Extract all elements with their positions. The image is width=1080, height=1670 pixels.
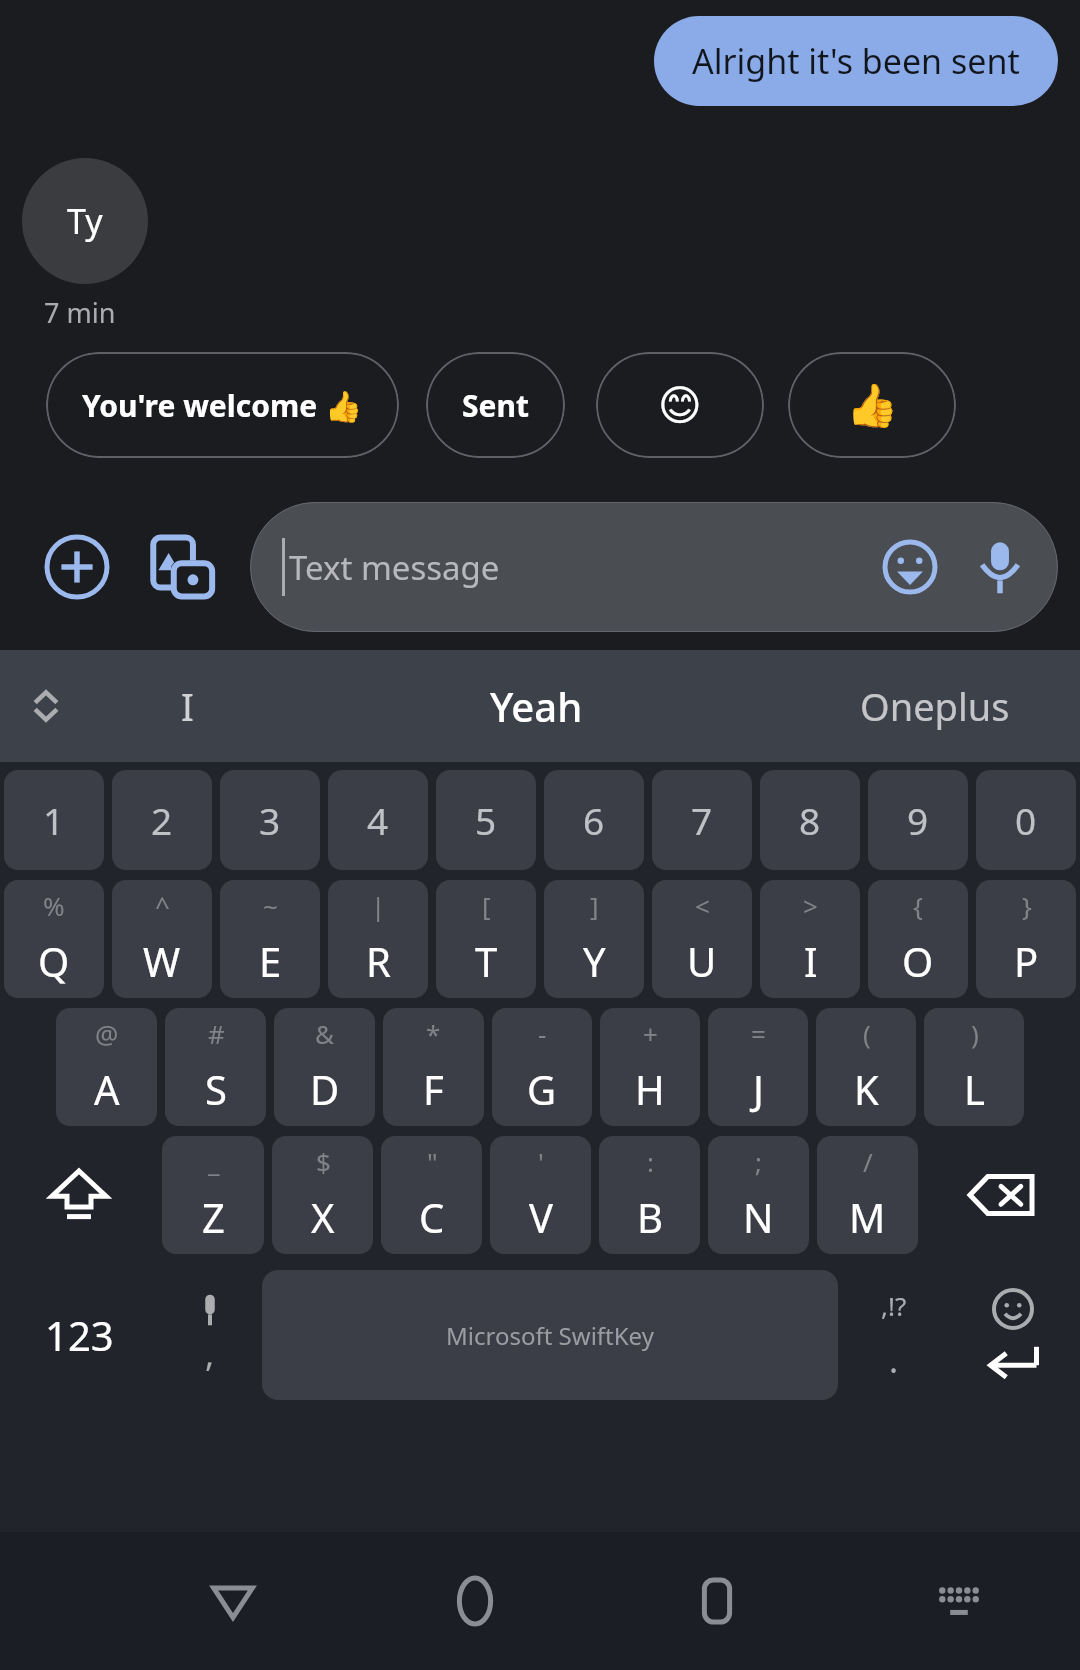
staticText: Y: [583, 934, 606, 988]
staticText: U: [687, 934, 717, 988]
button[interactable]: 5: [436, 770, 536, 870]
button[interactable]: Hide keyboard: [919, 1561, 999, 1641]
button[interactable]: 3: [220, 770, 320, 870]
button[interactable]: Add attachment: [44, 534, 110, 600]
button[interactable]: 8: [760, 770, 860, 870]
button[interactable]: ': [490, 1136, 591, 1254]
button[interactable]: %: [4, 880, 104, 998]
staticText: O: [902, 934, 934, 988]
staticText: Oneplus: [860, 680, 1010, 732]
button[interactable]: 9: [868, 770, 968, 870]
button[interactable]: |: [328, 880, 428, 998]
button[interactable]: 2: [112, 770, 212, 870]
staticText: ,!?: [881, 1288, 907, 1323]
staticText: Ty: [67, 198, 103, 244]
button[interactable]: -: [492, 1008, 592, 1126]
button[interactable]: Emoji: [882, 539, 938, 595]
staticText: 👍: [846, 381, 899, 430]
button[interactable]: }: [976, 880, 1076, 998]
button[interactable]: Backspace: [922, 1136, 1080, 1254]
button[interactable]: Yeah: [282, 650, 790, 762]
button[interactable]: <: [652, 880, 752, 998]
button[interactable]: Thumbs up: [788, 352, 956, 458]
button[interactable]: *: [383, 1008, 484, 1126]
button[interactable]: Send photo: [152, 535, 216, 599]
staticText: _: [208, 1144, 220, 1179]
button[interactable]: Smiling face: [596, 352, 764, 458]
button[interactable]: You're welcome 👍: [46, 352, 399, 458]
button[interactable]: $: [272, 1136, 373, 1254]
button[interactable]: Text message: [250, 502, 1058, 632]
staticText: 0: [1015, 795, 1037, 845]
button[interactable]: 0: [976, 770, 1076, 870]
staticText: R: [366, 934, 391, 988]
staticText: V: [529, 1190, 553, 1244]
button[interactable]: [: [436, 880, 536, 998]
button[interactable]: Emoji and enter: [946, 1270, 1080, 1400]
staticText: $: [316, 1144, 331, 1179]
button[interactable]: 123: [0, 1270, 158, 1400]
staticText: &: [315, 1016, 335, 1051]
staticText: B: [637, 1190, 663, 1244]
staticText: >: [803, 888, 818, 923]
button[interactable]: Oneplus: [790, 650, 1080, 762]
button[interactable]: >: [760, 880, 860, 998]
button[interactable]: Alright it's been sent: [654, 16, 1058, 106]
staticText: You're welcome 👍: [82, 385, 363, 426]
button[interactable]: ~: [220, 880, 320, 998]
staticText: M: [849, 1190, 886, 1244]
button[interactable]: /: [817, 1136, 918, 1254]
staticText: L: [964, 1062, 985, 1116]
button[interactable]: ]: [544, 880, 644, 998]
staticText: +: [643, 1016, 658, 1051]
button[interactable]: Back: [193, 1561, 273, 1641]
staticText: Sent: [462, 385, 529, 426]
button[interactable]: 4: [328, 770, 428, 870]
button[interactable]: Voice input: [972, 539, 1028, 595]
button[interactable]: +: [600, 1008, 700, 1126]
button[interactable]: &: [274, 1008, 375, 1126]
button[interactable]: Home: [435, 1561, 515, 1641]
staticText: [: [482, 888, 491, 923]
button[interactable]: Voice typing and comma: [158, 1270, 262, 1400]
button[interactable]: Expand suggestions: [0, 650, 92, 762]
staticText: Alright it's been sent: [692, 38, 1020, 84]
staticText: (: [863, 1016, 871, 1051]
staticText: .: [889, 1337, 899, 1383]
button[interactable]: Recent apps: [677, 1561, 757, 1641]
staticText: P: [1014, 934, 1039, 988]
staticText: =: [751, 1016, 766, 1051]
button[interactable]: Shift: [0, 1136, 158, 1254]
staticText: G: [527, 1062, 557, 1116]
staticText: 2: [151, 795, 173, 845]
button[interactable]: ^: [112, 880, 212, 998]
button[interactable]: ": [381, 1136, 482, 1254]
button[interactable]: _: [162, 1136, 264, 1254]
button[interactable]: {: [868, 880, 968, 998]
button[interactable]: Sent: [426, 352, 565, 458]
staticText: ^: [155, 888, 170, 923]
staticText: ]: [590, 888, 599, 923]
button[interactable]: Ty: [22, 158, 148, 284]
staticText: Text message: [289, 545, 882, 590]
button[interactable]: @: [56, 1008, 157, 1126]
staticText: %: [43, 888, 65, 923]
button[interactable]: #: [165, 1008, 266, 1126]
button[interactable]: Microsoft SwiftKey: [262, 1270, 838, 1400]
staticText: H: [635, 1062, 665, 1116]
button[interactable]: ): [924, 1008, 1024, 1126]
staticText: }: [1022, 888, 1032, 923]
staticText: 5: [475, 795, 497, 845]
staticText: I: [181, 680, 194, 732]
button[interactable]: ;: [708, 1136, 809, 1254]
staticText: 1: [43, 795, 65, 845]
button[interactable]: I: [92, 650, 282, 762]
button[interactable]: :: [599, 1136, 700, 1254]
button[interactable]: 7: [652, 770, 752, 870]
button[interactable]: 6: [544, 770, 644, 870]
button[interactable]: 1: [4, 770, 104, 870]
button[interactable]: (: [816, 1008, 916, 1126]
staticText: 123: [45, 1308, 114, 1362]
button[interactable]: =: [708, 1008, 808, 1126]
button[interactable]: Punctuation: [842, 1270, 946, 1400]
